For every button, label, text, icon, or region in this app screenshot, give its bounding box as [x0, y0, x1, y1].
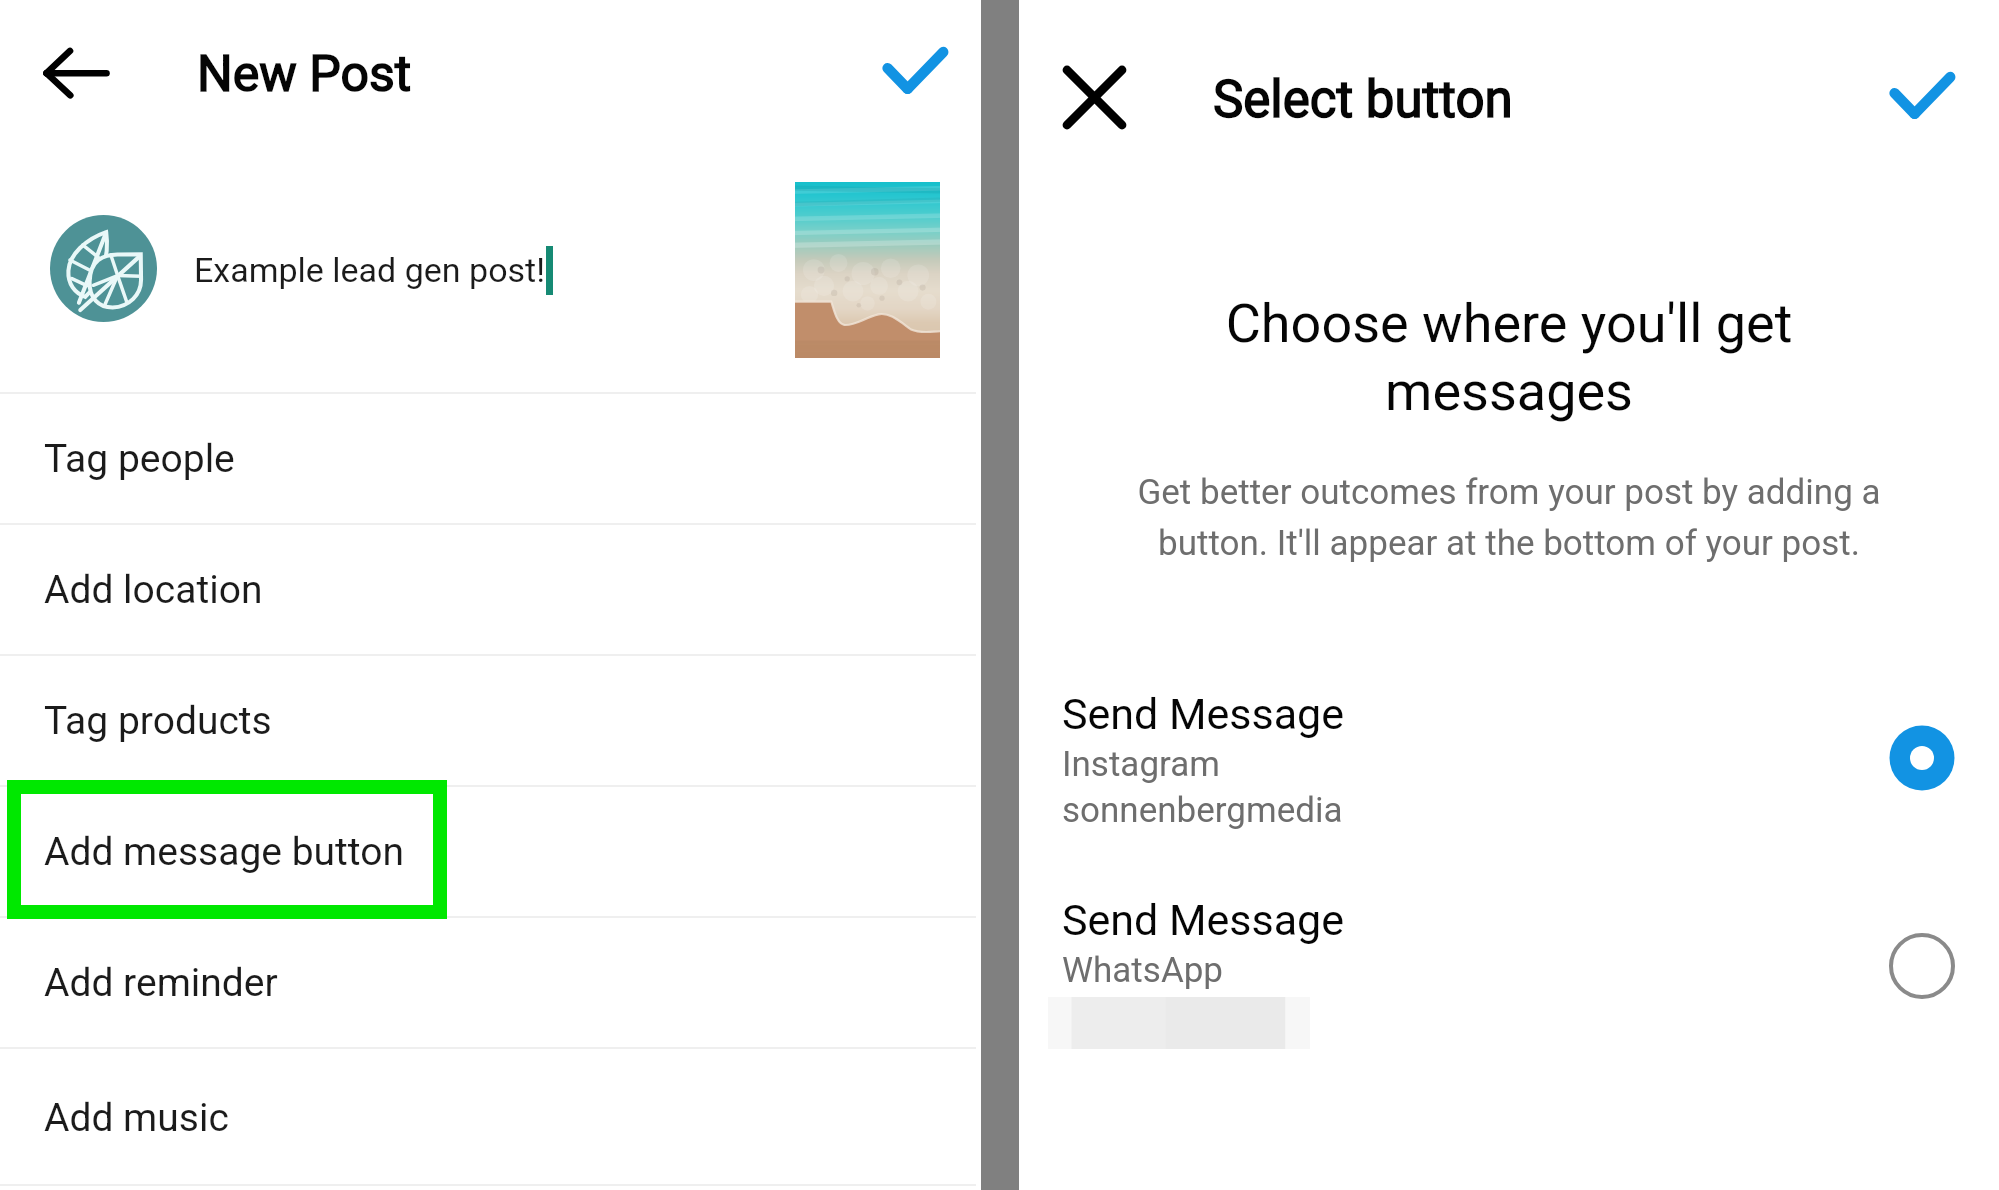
button[interactable]: Select Send Message: [1885, 929, 1959, 1003]
button[interactable]: Add location: [0, 525, 981, 654]
button[interactable]: [1019, 669, 1999, 829]
staticText: Send Message: [1062, 689, 1345, 739]
button[interactable]: Share post: [851, 23, 947, 119]
button[interactable]: Add music: [0, 1049, 981, 1186]
staticText: New Post: [197, 45, 412, 104]
staticText: Send Message: [1062, 895, 1345, 945]
button[interactable]: Tag products: [0, 656, 981, 785]
staticText: Example lead gen post!: [194, 250, 545, 290]
button[interactable]: Close: [1047, 49, 1143, 145]
button[interactable]: Tag people: [0, 394, 981, 523]
staticText: Tag people: [44, 436, 235, 482]
button[interactable]: Add reminder: [0, 918, 981, 1047]
button[interactable]: Back: [30, 23, 126, 119]
staticText: Select button: [1213, 70, 1513, 130]
staticText: WhatsApp: [1062, 950, 1224, 991]
button[interactable]: [1019, 875, 1999, 1035]
staticText: Tag products: [44, 698, 272, 744]
staticText: Add location: [44, 567, 263, 613]
staticText: Add reminder: [44, 960, 278, 1006]
button[interactable]: Confirm selection: [1858, 48, 1954, 144]
staticText: Instagram sonnenbergmedia: [1062, 744, 1343, 831]
staticText: Get better outcomes from your post by ad…: [1131, 472, 1887, 564]
button[interactable]: Add message button: [0, 787, 981, 916]
button[interactable]: Send Message selected: [1885, 721, 1959, 795]
staticText: Add music: [44, 1095, 229, 1141]
staticText: Add message button: [44, 829, 405, 875]
staticText: Choose where you'll get messages: [1179, 292, 1839, 423]
